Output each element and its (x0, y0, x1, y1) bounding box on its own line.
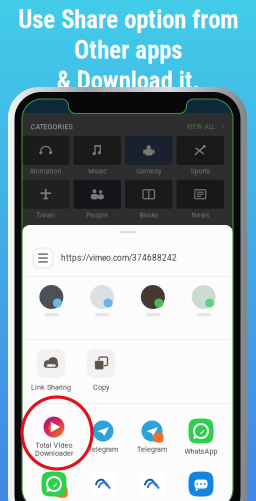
staticText: Books (140, 211, 158, 219)
staticText: Link Sharing (31, 383, 71, 391)
button[interactable] (29, 468, 78, 501)
staticText: News (192, 211, 209, 219)
button[interactable]: WhatsApp (176, 415, 225, 459)
button[interactable]: Copy (76, 349, 126, 391)
button[interactable] (178, 285, 229, 316)
button[interactable] (26, 285, 77, 316)
button[interactable] (78, 468, 127, 501)
staticText: & Download it. (56, 66, 199, 96)
staticText: Copy (93, 383, 109, 391)
staticText: Comedy (136, 167, 161, 175)
button[interactable]: Comedy (125, 136, 172, 175)
staticText: WhatsApp (184, 447, 217, 455)
button[interactable] (127, 468, 176, 501)
button[interactable]: Link Sharing (26, 349, 76, 391)
button[interactable]: Telegram (78, 415, 127, 459)
button[interactable]: Music (73, 136, 121, 175)
button[interactable] (77, 285, 128, 316)
staticText: https://vimeo.com/374688242 (61, 253, 177, 263)
button[interactable] (176, 468, 225, 501)
button[interactable]: Total Video (29, 415, 78, 459)
staticText: CATEGORIES (30, 122, 72, 131)
button[interactable]: Sports (176, 136, 224, 175)
staticText: Travel (36, 211, 55, 219)
button[interactable] (127, 285, 178, 316)
staticText: Sports (191, 167, 210, 175)
button[interactable]: Books (125, 180, 172, 219)
staticText: Use Share option from (18, 5, 238, 34)
staticText: Downloader (35, 449, 73, 457)
button[interactable]: People (73, 180, 121, 219)
staticText: People (86, 211, 108, 219)
button[interactable]: Travel (22, 180, 69, 219)
button[interactable]: Telegram (127, 415, 176, 459)
staticText: VIEW ALL › (186, 123, 224, 130)
button[interactable]: Animation (22, 136, 69, 175)
staticText: Other apps (74, 36, 182, 65)
staticText: Telegram (137, 445, 167, 453)
staticText: Animation (30, 167, 62, 175)
button[interactable]: News (176, 180, 224, 219)
staticText: Total Video (35, 441, 72, 449)
staticText: Telegram (88, 445, 118, 453)
staticText: Music (88, 167, 106, 175)
